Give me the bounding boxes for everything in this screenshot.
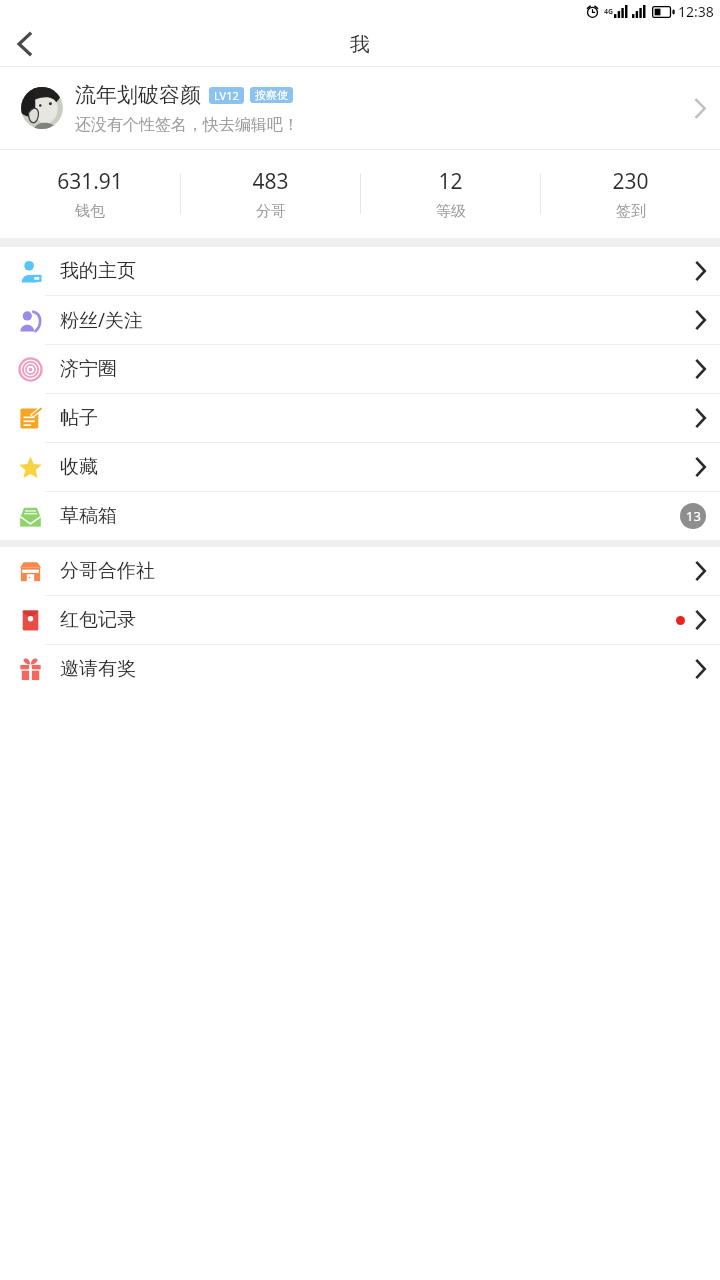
staticText: 12 xyxy=(438,167,463,196)
staticText: 按察使 xyxy=(255,88,288,102)
button[interactable]: 分哥合作社 xyxy=(0,547,720,595)
staticText: 我 xyxy=(350,32,370,57)
staticText: 分哥合作社 xyxy=(60,559,155,583)
staticText: 粉丝/关注 xyxy=(60,307,144,333)
button[interactable]: 12 xyxy=(361,150,540,238)
staticText: 等级 xyxy=(436,202,466,221)
button[interactable]: 230 xyxy=(541,150,720,238)
button[interactable]: 483 xyxy=(181,150,360,238)
staticText: 4G xyxy=(604,7,614,17)
button[interactable]: 红包记录 xyxy=(0,596,720,644)
staticText: 济宁圈 xyxy=(60,357,117,381)
button[interactable]: 邀请有奖 xyxy=(0,645,720,693)
staticText: 流年划破容颜 xyxy=(75,82,201,108)
staticText: 我的主页 xyxy=(60,259,136,283)
staticText: 13 xyxy=(686,507,701,525)
button[interactable]: 我的主页 xyxy=(0,247,720,295)
staticText: 12:38 xyxy=(678,2,714,21)
button[interactable]: 631.91 xyxy=(0,150,180,238)
staticText: 签到 xyxy=(616,202,646,221)
staticText: 230 xyxy=(612,167,649,196)
button[interactable]: 流年划破容颜 xyxy=(0,67,720,149)
button[interactable]: 收藏 xyxy=(0,443,720,491)
staticText: 帖子 xyxy=(60,406,98,430)
staticText: 631.91 xyxy=(57,167,123,196)
button[interactable]: 粉丝/关注 xyxy=(0,296,720,344)
button[interactable]: 帖子 xyxy=(0,394,720,442)
staticText: 红包记录 xyxy=(60,608,136,632)
button[interactable]: Back xyxy=(0,22,48,66)
staticText: LV12 xyxy=(214,88,239,103)
button[interactable]: 草稿箱 xyxy=(0,492,720,540)
button[interactable]: 济宁圈 xyxy=(0,345,720,393)
staticText: 收藏 xyxy=(60,455,98,479)
staticText: 483 xyxy=(252,167,289,196)
staticText: 草稿箱 xyxy=(60,504,117,528)
staticText: 邀请有奖 xyxy=(60,657,136,681)
staticText: 还没有个性签名，快去编辑吧！ xyxy=(75,115,299,135)
staticText: 分哥 xyxy=(256,202,286,221)
staticText: 钱包 xyxy=(75,202,105,221)
